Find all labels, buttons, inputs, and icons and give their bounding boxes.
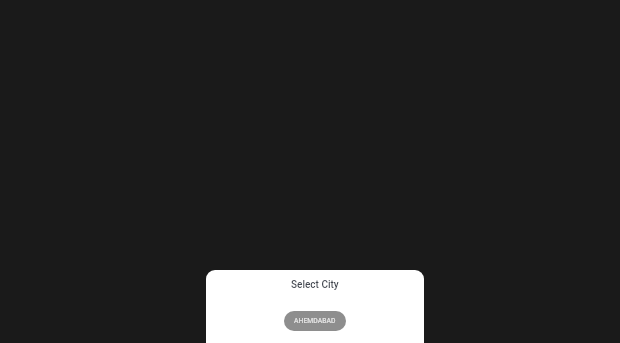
- button[interactable]: AHEMDABAD: [284, 311, 346, 331]
- staticText: Select City: [291, 279, 339, 291]
- button[interactable]: Dismiss dialog: [0, 0, 620, 343]
- staticText: AHEMDABAD: [294, 317, 336, 325]
